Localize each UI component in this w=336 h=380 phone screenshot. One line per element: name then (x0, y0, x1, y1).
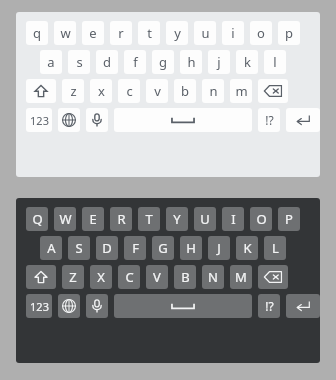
button[interactable]: Backspace (258, 265, 288, 289)
button[interactable]: S (68, 236, 90, 260)
button[interactable]: O (250, 207, 272, 231)
staticText: E (89, 210, 97, 228)
staticText: o (257, 24, 265, 42)
staticText: y (174, 24, 181, 42)
button[interactable]: W (54, 207, 76, 231)
button[interactable]: Space (114, 108, 252, 132)
button[interactable]: Voice input (86, 108, 108, 132)
button[interactable]: K (236, 236, 258, 260)
staticText: Q (32, 210, 43, 228)
button[interactable]: e (82, 21, 104, 45)
button[interactable]: V (146, 265, 168, 289)
button[interactable]: b (174, 79, 196, 103)
button[interactable]: F (124, 236, 146, 260)
button[interactable]: k (236, 50, 258, 74)
button[interactable]: t (138, 21, 160, 45)
button[interactable]: l (264, 50, 286, 74)
button[interactable]: Shift (26, 265, 56, 289)
button[interactable]: r (110, 21, 132, 45)
button[interactable]: Enter (286, 294, 320, 318)
button[interactable]: o (250, 21, 272, 45)
button[interactable]: y (166, 21, 188, 45)
button[interactable]: Backspace (258, 79, 288, 103)
button[interactable]: B (174, 265, 196, 289)
button[interactable]: x (90, 79, 112, 103)
button[interactable]: s (68, 50, 90, 74)
button[interactable]: m (230, 79, 252, 103)
button[interactable]: w (54, 21, 76, 45)
button[interactable]: Shift (26, 79, 56, 103)
button[interactable]: h (180, 50, 202, 74)
button[interactable]: c (118, 79, 140, 103)
button[interactable]: Change language (58, 294, 80, 318)
staticText: q (33, 24, 41, 42)
button[interactable]: !? (258, 294, 280, 318)
staticText: L (272, 239, 279, 257)
button[interactable]: p (278, 21, 300, 45)
staticText: A (47, 239, 56, 257)
button[interactable]: I (222, 207, 244, 231)
button[interactable]: v (146, 79, 168, 103)
button[interactable]: g (152, 50, 174, 74)
staticText: F (132, 239, 139, 257)
button[interactable]: n (202, 79, 224, 103)
button[interactable]: U (194, 207, 216, 231)
staticText: b (181, 82, 189, 100)
staticText: K (243, 239, 252, 257)
staticText: a (47, 53, 55, 71)
button[interactable]: X (90, 265, 112, 289)
button[interactable]: P (278, 207, 300, 231)
button[interactable]: Q (26, 207, 48, 231)
button[interactable]: Z (62, 265, 84, 289)
button[interactable]: 123 (26, 108, 52, 132)
button[interactable]: L (264, 236, 286, 260)
button[interactable]: Change language (58, 108, 80, 132)
staticText: J (217, 239, 221, 257)
button[interactable]: u (194, 21, 216, 45)
staticText: l (273, 53, 277, 71)
staticText: W (59, 210, 72, 228)
button[interactable]: C (118, 265, 140, 289)
button[interactable]: d (96, 50, 118, 74)
staticText: D (102, 239, 112, 257)
button[interactable]: G (152, 236, 174, 260)
button[interactable]: J (208, 236, 230, 260)
button[interactable]: Space (114, 294, 252, 318)
button[interactable]: N (202, 265, 224, 289)
button[interactable]: q (26, 21, 48, 45)
button[interactable]: D (96, 236, 118, 260)
staticText: 123 (30, 299, 49, 314)
button[interactable]: M (230, 265, 252, 289)
button[interactable]: j (208, 50, 230, 74)
button[interactable]: !? (258, 108, 280, 132)
button[interactable]: T (138, 207, 160, 231)
staticText: d (103, 53, 111, 71)
button[interactable]: f (124, 50, 146, 74)
staticText: s (76, 53, 83, 71)
button[interactable]: R (110, 207, 132, 231)
button[interactable]: 123 (26, 294, 52, 318)
staticText: N (208, 268, 218, 286)
button[interactable]: a (40, 50, 62, 74)
staticText: I (231, 210, 236, 228)
staticText: h (187, 53, 196, 71)
staticText: R (117, 210, 126, 228)
staticText: B (181, 268, 190, 286)
button[interactable]: Enter (286, 108, 320, 132)
staticText: Y (173, 210, 181, 228)
button[interactable]: Y (166, 207, 188, 231)
staticText: H (186, 239, 196, 257)
staticText: Z (69, 268, 77, 286)
button[interactable]: Voice input (86, 294, 108, 318)
button[interactable]: z (62, 79, 84, 103)
staticText: !? (265, 298, 274, 314)
button[interactable]: E (82, 207, 104, 231)
staticText: x (98, 82, 105, 100)
button[interactable]: A (40, 236, 62, 260)
staticText: U (200, 210, 210, 228)
button[interactable]: i (222, 21, 244, 45)
button[interactable]: H (180, 236, 202, 260)
staticText: r (118, 24, 124, 42)
staticText: X (97, 268, 105, 286)
staticText: S (75, 239, 83, 257)
